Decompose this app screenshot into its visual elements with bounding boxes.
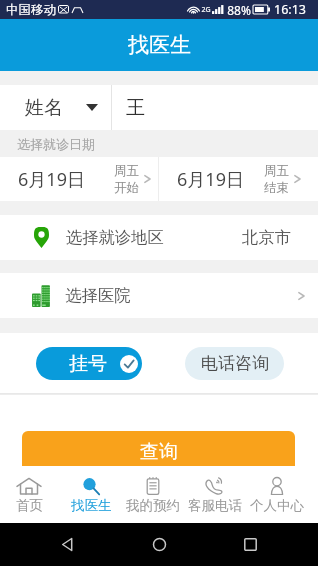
- button[interactable]: 6月19日: [159, 157, 318, 201]
- staticText: 电话咨询: [201, 353, 269, 374]
- staticText: 客服电话: [188, 497, 242, 514]
- staticText: 中国移动: [6, 2, 56, 18]
- staticText: 6月19日: [177, 167, 244, 192]
- button[interactable]: 选择医院: [0, 273, 318, 318]
- staticText: 16:13: [274, 1, 306, 18]
- button[interactable]: 首页: [0, 466, 60, 523]
- staticText: 找医生: [128, 32, 191, 58]
- staticText: 个人中心: [250, 497, 304, 514]
- other: Recents: [243, 537, 258, 552]
- staticText: 开始: [114, 180, 139, 196]
- button[interactable]: 电话咨询: [185, 347, 284, 380]
- staticText: 88%: [227, 2, 251, 18]
- staticText: 找医生: [71, 497, 112, 514]
- button[interactable]: 我的预约: [122, 466, 184, 523]
- staticText: 2G: [201, 5, 211, 15]
- button[interactable]: 查询: [22, 431, 295, 473]
- staticText: 查询: [140, 440, 178, 464]
- button[interactable]: 找医生: [60, 466, 122, 523]
- other: Back: [60, 537, 75, 552]
- staticText: 姓名: [25, 96, 63, 120]
- staticText: 选择就诊地区: [66, 227, 164, 248]
- button[interactable]: 选择就诊地区: [0, 215, 318, 260]
- staticText: 首页: [16, 497, 43, 514]
- staticText: 挂号: [69, 352, 107, 376]
- button[interactable]: 6月19日: [0, 157, 158, 201]
- staticText: 结束: [264, 180, 289, 196]
- staticText: 选择医院: [65, 285, 131, 306]
- staticText: 王: [126, 96, 145, 120]
- staticText: 周五: [264, 163, 289, 179]
- other: Home: [152, 537, 167, 552]
- staticText: 我的预约: [126, 497, 180, 514]
- button[interactable]: 个人中心: [246, 466, 308, 523]
- button[interactable]: 姓名: [0, 85, 318, 130]
- button[interactable]: 客服电话: [184, 466, 246, 523]
- staticText: 选择就诊日期: [17, 136, 95, 152]
- staticText: 周五: [114, 163, 139, 179]
- staticText: 6月19日: [18, 167, 85, 192]
- button[interactable]: 挂号: [36, 347, 142, 380]
- staticText: 北京市: [242, 227, 291, 248]
